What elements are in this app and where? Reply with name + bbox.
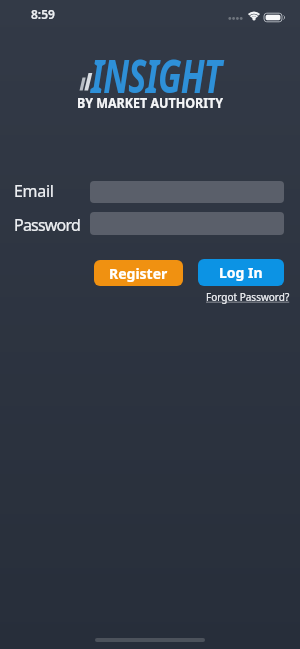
staticText: 8:59 [31, 6, 55, 22]
staticText: BY MARKET AUTHORITY [16, 93, 283, 649]
button[interactable]: Forgot Password? [206, 290, 290, 304]
staticText: Email [14, 180, 54, 202]
staticText: INSIGHT [91, 44, 221, 107]
staticText: Register [109, 264, 168, 283]
staticText: Password [14, 214, 80, 236]
button[interactable]: Log In [198, 259, 284, 286]
button[interactable]: Register [94, 260, 183, 286]
staticText: Log In [219, 263, 263, 282]
